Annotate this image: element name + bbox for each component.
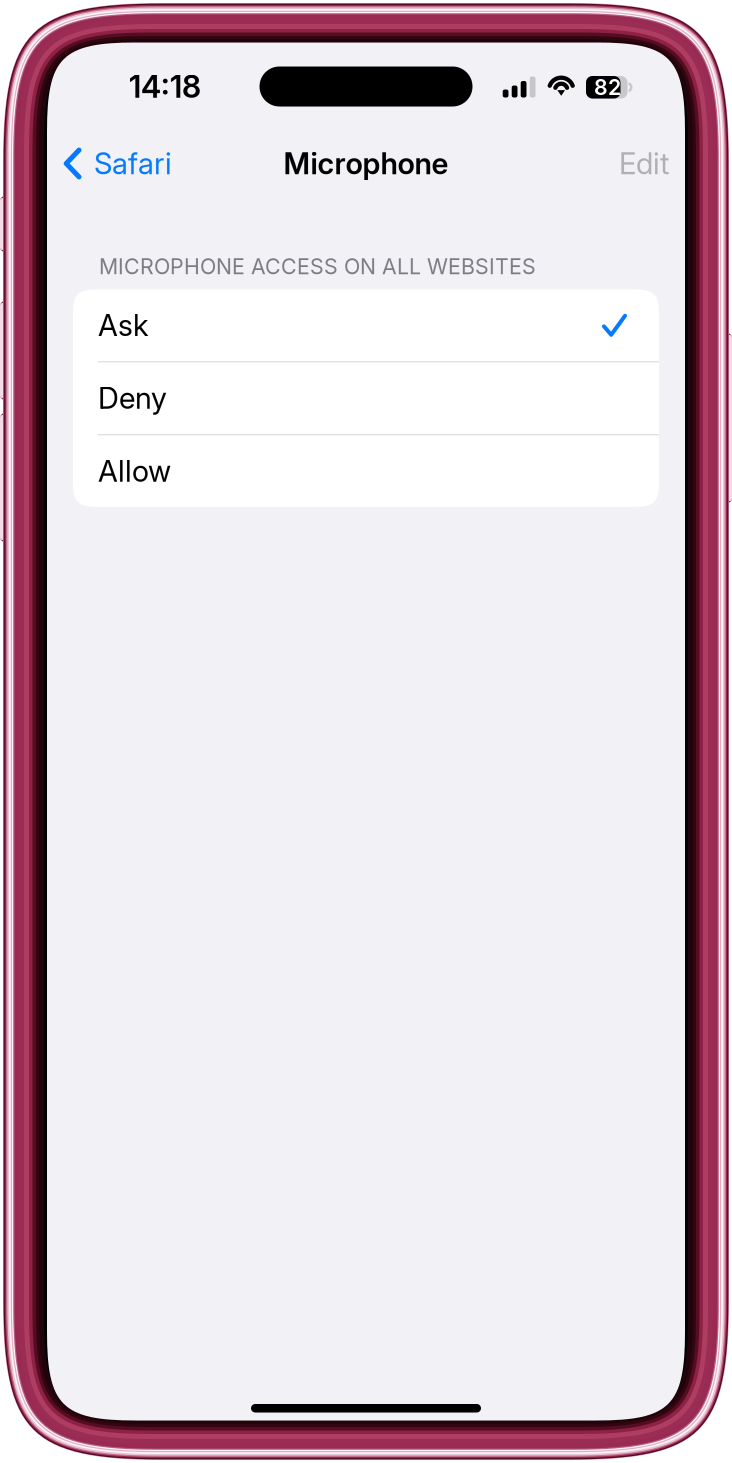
staticText: Ask [98, 308, 149, 343]
staticText: Edit [619, 146, 669, 181]
staticText: Microphone [283, 146, 448, 181]
button[interactable]: Ask [73, 289, 659, 361]
button[interactable]: Safari [47, 134, 188, 193]
button[interactable]: Edit [603, 134, 685, 193]
staticText: Safari [94, 146, 172, 181]
staticText: MICROPHONE ACCESS ON ALL WEBSITES [99, 254, 536, 279]
button[interactable]: Allow [73, 435, 659, 507]
button[interactable]: Deny [73, 362, 659, 434]
staticText: Allow [98, 453, 171, 489]
staticText: 82 [594, 74, 621, 100]
staticText: 14:18 [129, 68, 201, 105]
staticText: Deny [98, 380, 167, 416]
